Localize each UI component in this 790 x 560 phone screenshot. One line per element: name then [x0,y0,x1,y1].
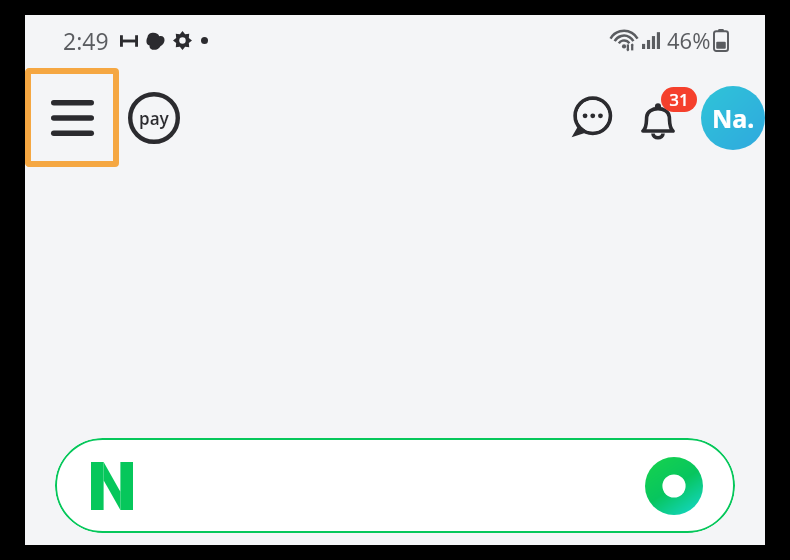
staticText: Na. [712,101,755,135]
button[interactable]: Notifications, 31 new [633,89,691,147]
staticText: 2:49 [63,25,109,56]
staticText: 31 [669,88,689,111]
button[interactable]: Messages [563,90,619,146]
button[interactable]: Search [55,438,735,533]
staticText: 46% [667,25,711,55]
button[interactable]: Menu [25,68,119,167]
button[interactable]: Na. [701,86,765,150]
staticText: pay [139,107,169,130]
button[interactable]: Pay [126,90,182,146]
